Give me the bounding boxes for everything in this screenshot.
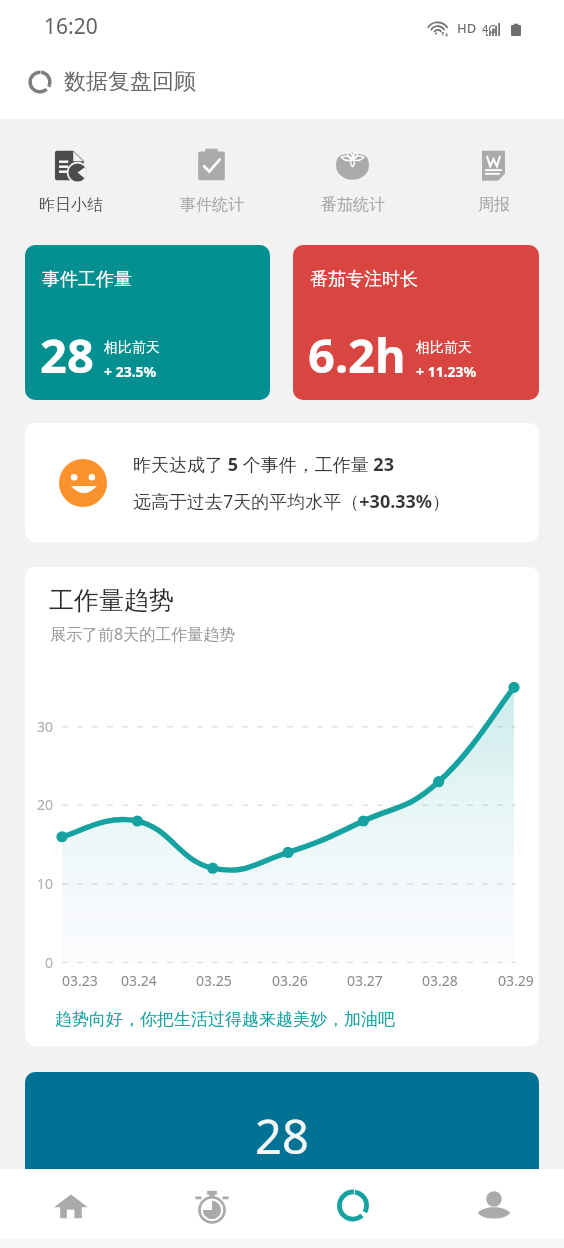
staticText: 0 <box>45 953 54 972</box>
staticText: 03.29 <box>498 971 534 990</box>
staticText: 远高于过去7天的平均水平（+30.33%） <box>133 489 451 514</box>
staticText: 事件工作量 <box>42 268 132 291</box>
staticText: 周报 <box>478 195 510 215</box>
staticText: 28 <box>40 323 94 387</box>
staticText: 03.26 <box>272 971 308 990</box>
button[interactable]: 我的 <box>423 1169 564 1239</box>
button[interactable]: 周报 <box>423 119 564 215</box>
button[interactable]: 番茄专注时长 <box>293 245 539 400</box>
staticText: 相比前天 <box>416 339 472 357</box>
staticText: 数据复盘回顾 <box>64 68 196 96</box>
staticText: 20 <box>37 795 54 814</box>
staticText: + 11.23% <box>416 362 477 381</box>
button[interactable]: 昨日小结 <box>0 119 141 215</box>
staticText: + 23.5% <box>104 362 157 381</box>
button[interactable]: 番茄统计 <box>282 119 423 215</box>
staticText: 16:20 <box>44 12 98 41</box>
staticText: 趋势向好，你把生活过得越来越美妙，加油吧 <box>55 1009 395 1030</box>
button[interactable]: 28 <box>25 1072 539 1202</box>
button[interactable]: 昨天达成了 5 个事件，工作量 23 <box>25 423 539 542</box>
button[interactable]: 主页 <box>0 1169 141 1239</box>
staticText: 6.2h <box>308 323 406 387</box>
staticText: 事件统计 <box>180 195 244 215</box>
staticText: 28 <box>255 1104 309 1168</box>
staticText: 展示了前8天的工作量趋势 <box>50 623 236 645</box>
staticText: 03.27 <box>347 971 383 990</box>
staticText: HD <box>457 19 477 37</box>
staticText: 番茄统计 <box>321 195 385 215</box>
staticText: 03.24 <box>121 971 157 990</box>
button[interactable]: 事件统计 <box>141 119 282 215</box>
staticText: 相比前天 <box>104 339 160 357</box>
staticText: 03.23 <box>62 971 98 990</box>
button[interactable]: 计时 <box>141 1169 282 1239</box>
staticText: 昨天达成了 5 个事件，工作量 23 <box>133 452 394 477</box>
staticText: 30 <box>37 717 54 736</box>
staticText: 03.25 <box>196 971 232 990</box>
staticText: 昨日小结 <box>39 195 103 215</box>
staticText: 番茄专注时长 <box>310 268 418 291</box>
button[interactable]: 事件工作量 <box>25 245 270 400</box>
staticText: 10 <box>37 874 54 893</box>
button[interactable]: 复盘 <box>282 1169 423 1239</box>
staticText: 工作量趋势 <box>49 585 174 616</box>
staticText: 03.28 <box>422 971 458 990</box>
staticText: 4G <box>482 21 497 36</box>
